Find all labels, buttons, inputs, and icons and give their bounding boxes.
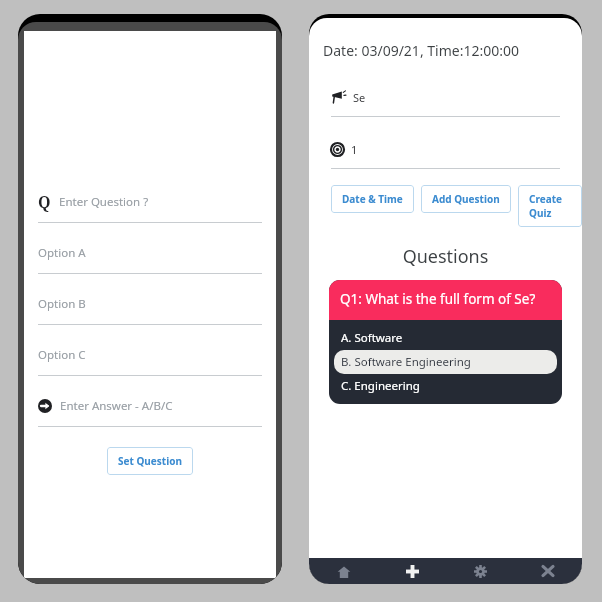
staticText: Set Question [118,454,182,468]
button[interactable]: Close [514,558,582,584]
button[interactable]: C. Engineering [334,374,557,398]
staticText: Add Question [432,192,500,206]
staticText: Option A [38,245,86,261]
staticText: Option B [38,296,86,312]
staticText: Questions [309,244,582,269]
staticText: Q [38,191,51,213]
button[interactable]: Add [378,558,446,584]
staticText: Option C [38,347,86,363]
staticText: A. Software [341,330,403,346]
button[interactable]: A. Software [334,326,557,350]
button[interactable]: Settings [446,558,514,584]
staticText: B. Software Engineering [341,354,471,370]
staticText: C. Engineering [341,378,420,394]
staticText: Create Quiz [529,192,571,220]
button[interactable]: Q1: What is the full form of Se? [329,280,562,404]
staticText: Date: 03/09/21, Time:12:00:00 [323,41,519,60]
staticText: Enter Question ? [59,194,149,210]
button[interactable]: Date & Time [331,185,414,213]
staticText: Enter Answer - A/B/C [60,398,173,414]
button[interactable]: Add Question [421,185,511,213]
staticText: Q1: What is the full form of Se? [340,290,536,308]
staticText: Date & Time [342,192,403,206]
button[interactable]: B. Software Engineering [334,350,557,374]
button[interactable]: Set Question [107,447,193,475]
button[interactable]: Home [309,558,378,584]
staticText: Se [353,90,366,105]
button[interactable]: Create Quiz [518,185,582,227]
staticText: 1 [351,142,358,157]
